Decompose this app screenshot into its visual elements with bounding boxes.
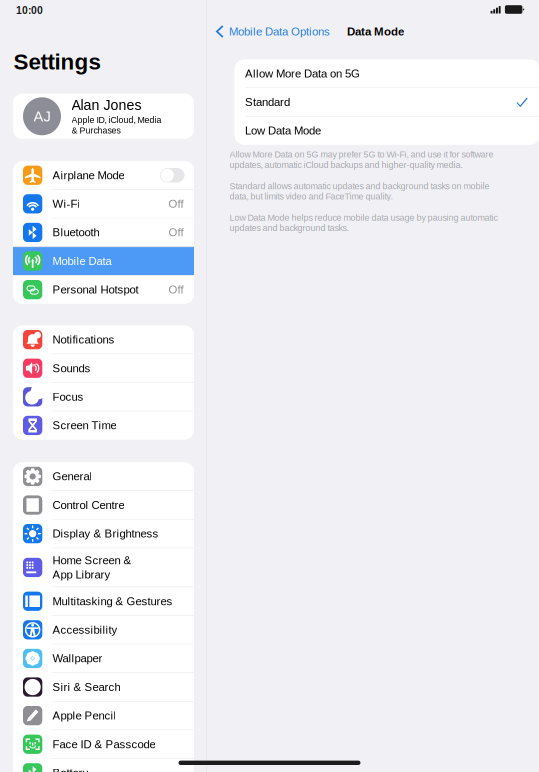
staticText: updates, automatic iCloud backups and hi… — [230, 160, 463, 170]
staticText: Wi-Fi — [52, 197, 80, 210]
staticText: Allow More Data on 5G — [245, 67, 360, 80]
staticText: Bluetooth — [52, 226, 99, 239]
staticText: Off — [168, 226, 183, 239]
staticText: data, but limits video and FaceTime qual… — [230, 191, 393, 201]
button[interactable]: Accessibility — [13, 616, 194, 644]
button[interactable]: Multitasking & Gestures — [13, 587, 194, 615]
staticText: Allow More Data on 5G may prefer 5G to W… — [230, 149, 494, 159]
staticText: 10:00 — [16, 4, 43, 16]
staticText: Settings — [13, 49, 100, 74]
staticText: Wallpaper — [52, 652, 102, 665]
staticText: Mobile Data — [52, 255, 111, 267]
button[interactable]: Home Screen & — [13, 548, 194, 587]
button[interactable]: Display & Brightness — [13, 520, 194, 548]
button[interactable]: Notifications — [13, 326, 194, 354]
button[interactable]: Face ID & Passcode — [13, 730, 194, 758]
staticText: Low Data Mode helps reduce mobile data u… — [230, 213, 498, 223]
button[interactable]: AJ — [13, 94, 194, 139]
button[interactable]: Battery — [13, 759, 194, 772]
button[interactable]: Low Data Mode — [235, 117, 539, 145]
staticText: Display & Brightness — [52, 527, 158, 540]
staticText: Standard allows automatic updates and ba… — [230, 181, 490, 191]
staticText: Siri & Search — [52, 681, 120, 693]
button[interactable]: Data Mode — [330, 23, 404, 39]
staticText: Apple ID, iCloud, Media — [71, 115, 161, 125]
button[interactable]: Mobile Data — [13, 247, 194, 275]
staticText: Notifications — [52, 333, 114, 346]
staticText: Focus — [52, 390, 83, 403]
button[interactable]: Siri & Search — [13, 673, 194, 701]
button[interactable]: Apple Pencil — [13, 702, 194, 730]
staticText: Off — [168, 197, 183, 210]
staticText: Low Data Mode — [245, 124, 321, 137]
staticText: Data Mode — [347, 25, 404, 38]
button[interactable]: Control Centre — [13, 491, 194, 519]
button[interactable]: Standard — [235, 88, 539, 116]
staticText: updates and background tasks. — [230, 223, 349, 233]
staticText: Mobile Data Options — [229, 25, 330, 38]
button[interactable]: Bluetooth — [13, 218, 194, 246]
button[interactable]: Focus — [13, 383, 194, 411]
button[interactable]: Wi-Fi — [13, 190, 194, 218]
staticText: Screen Time — [52, 419, 116, 432]
button[interactable]: Wallpaper — [13, 644, 194, 672]
button[interactable]: Screen Time — [13, 411, 194, 439]
button[interactable]: Allow More Data on 5G — [235, 60, 539, 88]
staticText: Personal Hotspot — [52, 283, 138, 296]
staticText: Battery — [52, 766, 88, 772]
staticText: Alan Jones — [71, 97, 141, 113]
staticText: Accessibility — [52, 623, 117, 636]
button[interactable]: Airplane Mode — [13, 161, 194, 189]
button[interactable]: Sounds — [13, 354, 194, 382]
staticText: Sounds — [52, 362, 90, 375]
staticText: Airplane Mode — [52, 169, 124, 182]
staticText: Control Centre — [52, 499, 124, 511]
staticText: App Library — [52, 568, 110, 581]
staticText: & Purchases — [71, 125, 120, 135]
staticText: Home Screen & — [52, 554, 131, 567]
staticText: AJ — [33, 108, 50, 124]
staticText: Face ID & Passcode — [52, 738, 155, 751]
staticText: Off — [168, 283, 183, 296]
button[interactable]: Personal Hotspot — [13, 276, 194, 304]
button[interactable]: Mobile Data Options — [207, 23, 330, 39]
staticText: Apple Pencil — [52, 709, 116, 722]
staticText: General — [52, 470, 92, 483]
staticText: Multitasking & Gestures — [52, 595, 172, 608]
button[interactable]: General — [13, 462, 194, 490]
staticText: Standard — [245, 96, 290, 108]
